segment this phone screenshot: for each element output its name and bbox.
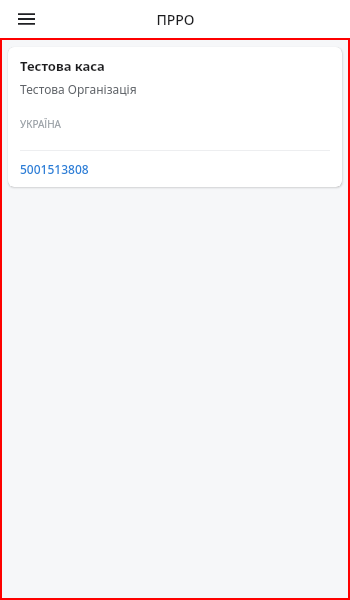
staticText: Тестова каса [20, 57, 105, 75]
button[interactable]: Тестова каса [8, 47, 342, 187]
staticText: Тестова Організація [20, 81, 137, 97]
staticText: УКРАЇНА [20, 117, 61, 131]
button[interactable]: Menu [10, 3, 42, 35]
button[interactable]: 5001513808 [20, 161, 89, 177]
staticText: ПРРО [156, 10, 195, 29]
